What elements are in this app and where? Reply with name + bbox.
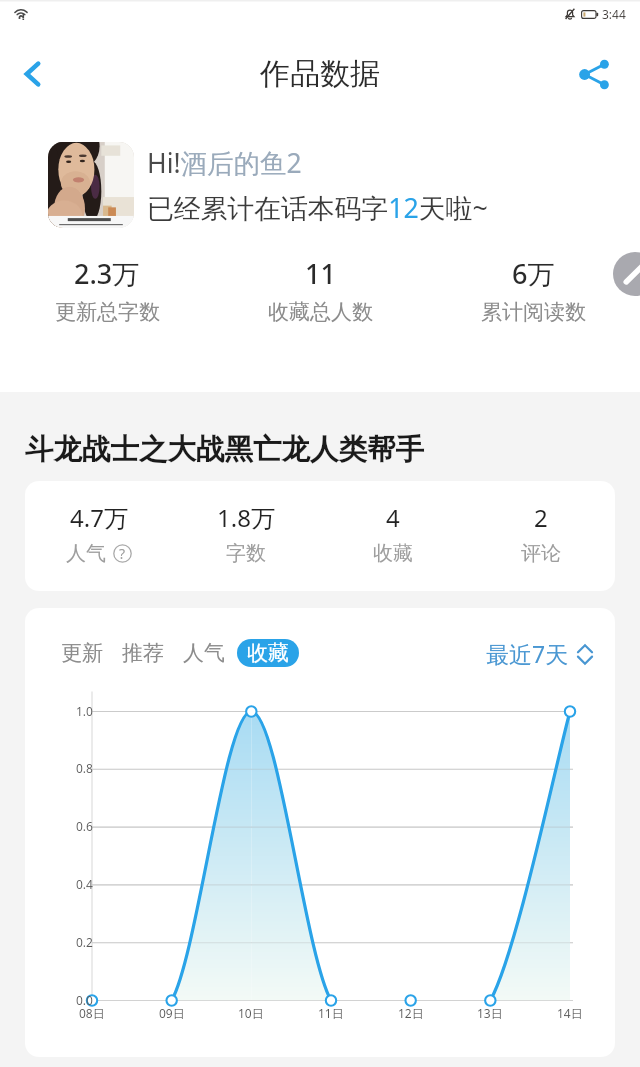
staticText: 08日 <box>79 1005 105 1021</box>
staticText: 收藏总人数 <box>268 299 373 325</box>
staticText: 2 <box>534 501 548 534</box>
button[interactable]: 推荐 <box>122 636 164 670</box>
button[interactable]: Share <box>569 49 619 99</box>
staticText: 人气 <box>66 541 106 566</box>
staticText: 收藏 <box>247 640 289 666</box>
staticText: 1.0 <box>76 703 93 719</box>
staticText: 0.8 <box>76 760 93 776</box>
staticText: 13日 <box>477 1005 503 1021</box>
staticText: 4 <box>386 501 400 534</box>
staticText: 推荐 <box>122 640 164 666</box>
button[interactable]: 人气 <box>183 636 225 670</box>
staticText: 斗龙战士之大战黑亡龙人类帮手 <box>25 432 424 468</box>
staticText: ? <box>119 544 126 563</box>
staticText: 1.8万 <box>217 501 275 534</box>
button[interactable]: 2 <box>467 499 615 568</box>
button[interactable]: 4 <box>319 499 467 568</box>
staticText: 3:44 <box>602 6 626 22</box>
staticText: 0.0 <box>76 992 93 1008</box>
staticText: 0.6 <box>76 818 93 834</box>
staticText: 最近7天 <box>486 638 569 669</box>
staticText: 0.4 <box>76 876 93 892</box>
button[interactable]: 11 <box>214 253 427 327</box>
staticText: 已经累计在话本码字12天啦~ <box>147 189 488 226</box>
staticText: 6万 <box>512 255 555 292</box>
staticText: 11日 <box>318 1005 344 1021</box>
staticText: 4.7万 <box>70 501 128 534</box>
staticText: 人气 <box>183 640 225 666</box>
button[interactable]: 收藏 <box>237 639 299 667</box>
staticText: Hi!酒后的鱼2 <box>147 145 302 181</box>
staticText: 评论 <box>521 541 561 566</box>
button[interactable]: 4.7万 <box>25 499 172 568</box>
button[interactable]: 最近7天 <box>486 638 593 669</box>
staticText: 更新总字数 <box>55 299 160 325</box>
button[interactable]: Profile photo <box>48 142 134 228</box>
button[interactable]: 1.8万 <box>172 499 319 568</box>
staticText: 14日 <box>557 1005 583 1021</box>
staticText: 09日 <box>159 1005 185 1021</box>
staticText: 收藏 <box>373 541 413 566</box>
button[interactable]: 2.3万 <box>0 253 214 327</box>
staticText: 12日 <box>398 1005 424 1021</box>
button[interactable]: 更新 <box>61 636 103 670</box>
staticText: 11 <box>305 255 336 292</box>
staticText: 更新 <box>61 640 103 666</box>
staticText: 作品数据 <box>260 55 380 93</box>
button[interactable]: Back <box>8 49 58 99</box>
button[interactable]: 6万 <box>427 253 640 327</box>
staticText: 0.2 <box>76 934 93 950</box>
staticText: 字数 <box>226 541 266 566</box>
staticText: 10日 <box>238 1005 264 1021</box>
button[interactable]: Edit <box>613 252 640 296</box>
staticText: 累计阅读数 <box>481 299 586 325</box>
staticText: 2.3万 <box>74 255 140 292</box>
